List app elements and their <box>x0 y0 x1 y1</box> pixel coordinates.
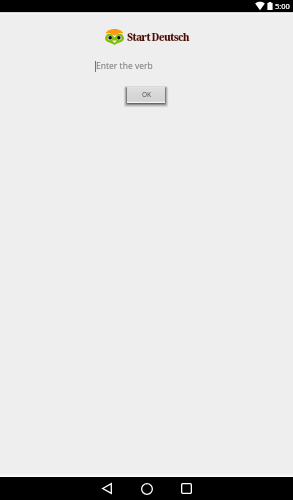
staticText: 5:00 <box>275 1 290 11</box>
staticText: Start Deutsch <box>127 30 189 44</box>
staticText: Enter the verb <box>96 60 153 72</box>
staticText: OK <box>142 90 152 99</box>
button[interactable]: OK <box>122 82 172 109</box>
button[interactable]: Recent apps <box>171 477 201 500</box>
button[interactable]: Enter the verb <box>88 57 198 75</box>
button[interactable]: Back <box>92 477 122 500</box>
button[interactable]: Home <box>132 477 162 500</box>
